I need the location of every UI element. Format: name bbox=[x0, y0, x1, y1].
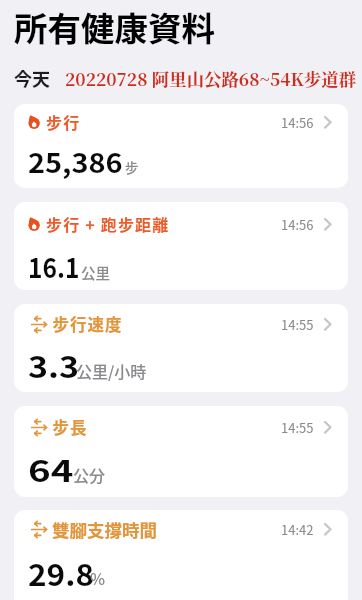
staticText: 3.3 bbox=[28, 343, 80, 386]
staticText: 25,386 bbox=[28, 142, 123, 180]
button[interactable]: 步行 + 跑步距離 bbox=[14, 202, 348, 290]
staticText: 公分 bbox=[73, 463, 106, 486]
button[interactable]: 雙腳支撐時間 bbox=[14, 510, 348, 600]
staticText: 20220728 阿里山公路68~54K步道群 bbox=[65, 66, 357, 91]
staticText: 14:55 bbox=[281, 418, 314, 437]
staticText: 步行速度 bbox=[52, 312, 122, 336]
staticText: 步 bbox=[125, 157, 139, 177]
staticText: 步行 bbox=[46, 110, 81, 133]
staticText: 公里 bbox=[81, 262, 110, 283]
staticText: 今天 bbox=[14, 65, 50, 91]
button[interactable]: 步長 bbox=[14, 406, 348, 497]
staticText: % bbox=[90, 566, 106, 589]
staticText: 14:55 bbox=[281, 315, 314, 334]
staticText: 64 bbox=[28, 447, 74, 490]
staticText: 雙腳支撐時間 bbox=[52, 517, 157, 542]
button[interactable]: 步行 bbox=[14, 104, 348, 188]
staticText: 14:42 bbox=[281, 520, 314, 539]
staticText: 14:56 bbox=[281, 113, 314, 132]
staticText: 步行 + 跑步距離 bbox=[46, 212, 170, 235]
button[interactable]: 步行速度 bbox=[14, 304, 348, 392]
staticText: 16.1 bbox=[28, 247, 80, 286]
staticText: 29.8 bbox=[28, 551, 94, 594]
staticText: 14:56 bbox=[281, 215, 314, 234]
staticText: 公里/小時 bbox=[76, 359, 147, 382]
staticText: 所有健康資料 bbox=[14, 2, 215, 51]
staticText: 步長 bbox=[52, 415, 87, 439]
